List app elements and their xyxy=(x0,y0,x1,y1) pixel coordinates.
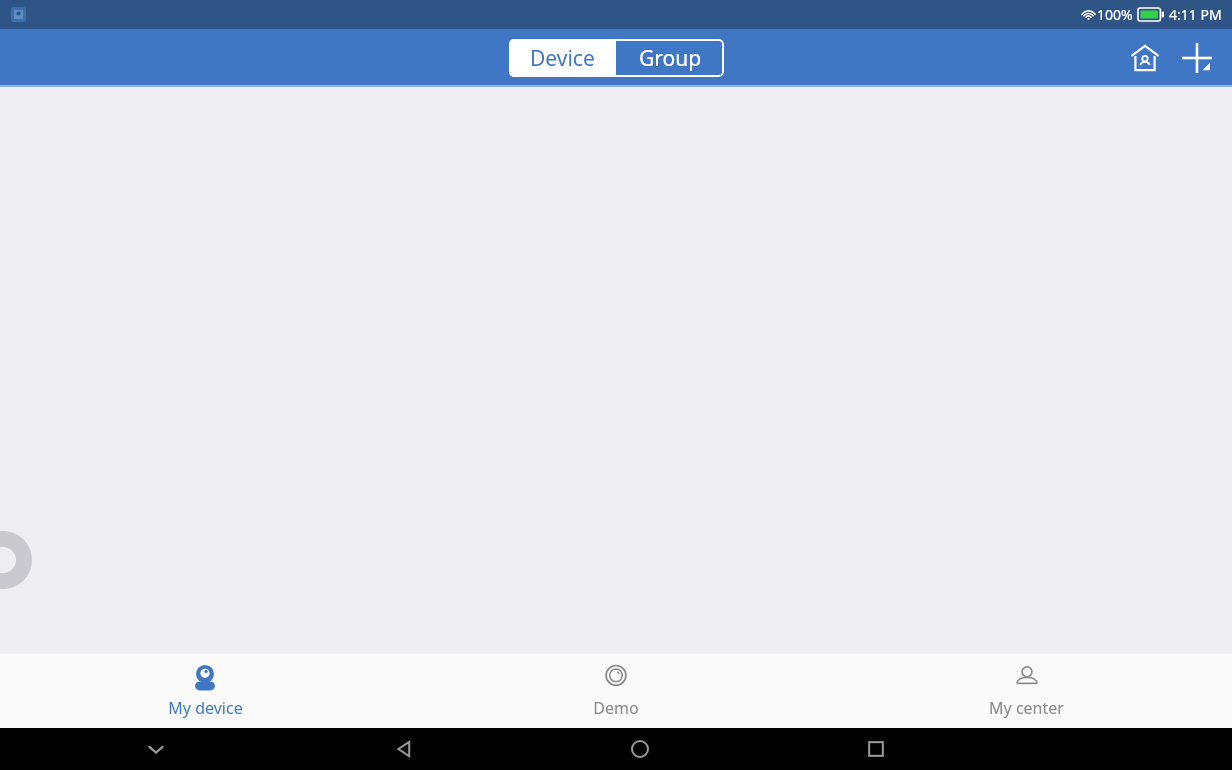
button[interactable]: Device xyxy=(509,39,616,77)
staticText: Group xyxy=(639,44,702,73)
staticText: Device xyxy=(530,44,595,73)
staticText: My center xyxy=(989,697,1064,719)
button[interactable]: Home xyxy=(522,728,758,770)
staticText: 100% xyxy=(1097,5,1133,24)
staticText: 4:11 PM xyxy=(1169,5,1222,24)
button[interactable]: My center xyxy=(821,654,1232,728)
button[interactable]: My device xyxy=(0,654,410,728)
button[interactable]: Back xyxy=(286,728,522,770)
button[interactable]: Add device xyxy=(1174,35,1220,81)
button[interactable]: Recent apps xyxy=(758,728,994,770)
button[interactable]: Demo xyxy=(410,654,821,728)
button[interactable]: Hide navigation bar xyxy=(26,728,286,770)
button[interactable]: Home xyxy=(1122,35,1168,81)
button[interactable]: Group xyxy=(616,39,724,77)
staticText: Demo xyxy=(593,697,639,719)
staticText: My device xyxy=(168,697,243,719)
